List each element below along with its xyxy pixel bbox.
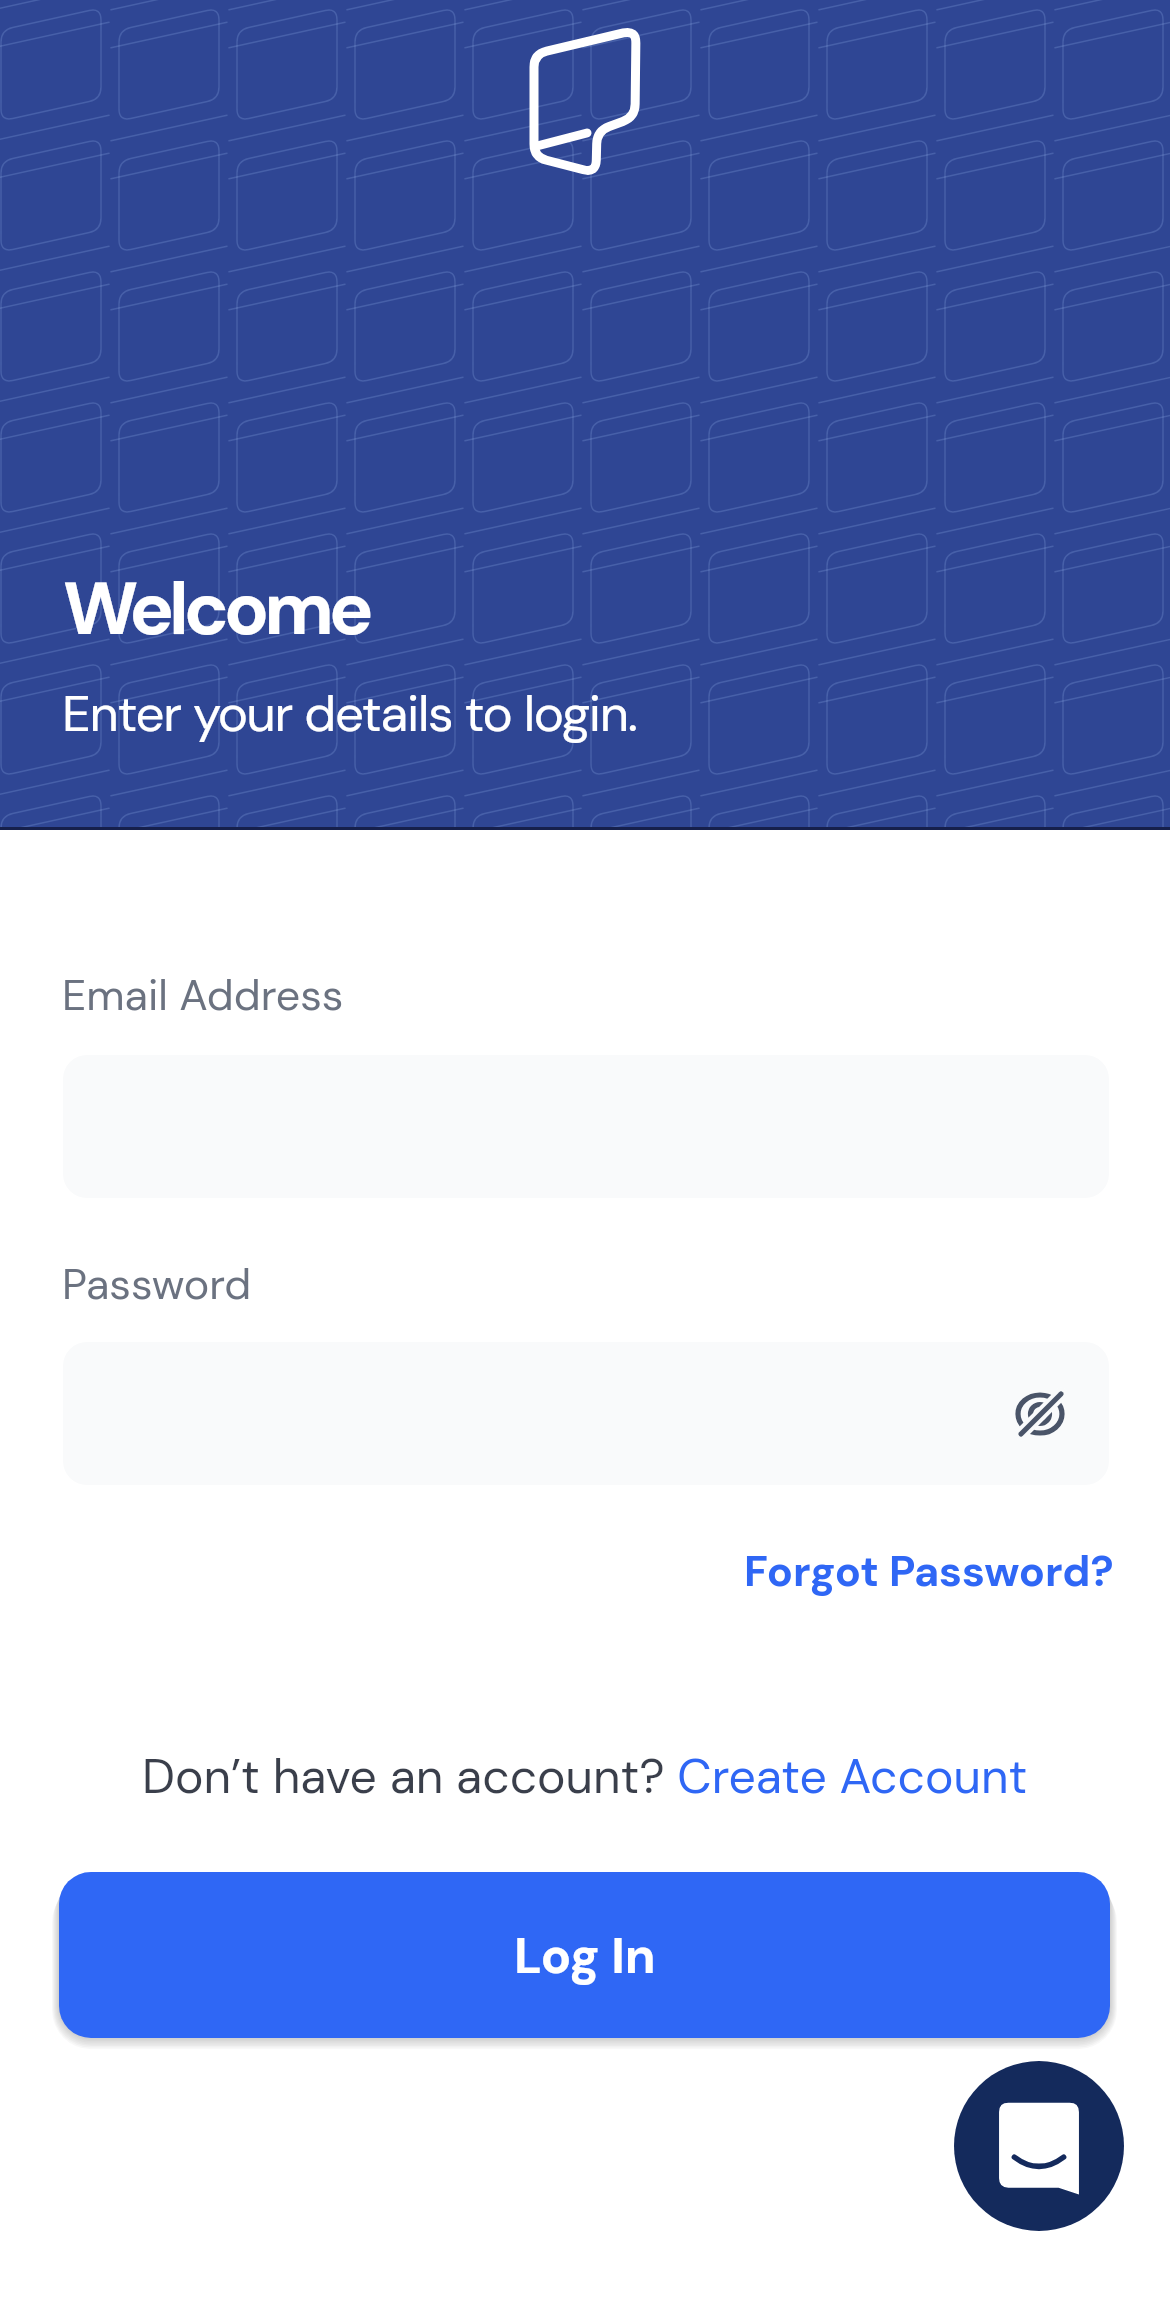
button[interactable]: Log In [59, 1872, 1110, 2038]
button[interactable]: Don’t have an account? Create Account [142, 1745, 1028, 1807]
button[interactable]: Open chat [954, 2061, 1124, 2231]
staticText: Log In [514, 1923, 656, 1988]
staticText: Welcome [63, 561, 369, 657]
staticText: Enter your details to login. [62, 680, 637, 746]
staticText: Don’t have an account? Create Account [142, 1745, 1028, 1807]
staticText: Email Address [62, 967, 344, 1023]
button[interactable]: Show password [63, 1342, 1109, 1485]
button[interactable]: Show password [990, 1364, 1090, 1464]
button[interactable]: Forgot Password? [744, 1543, 1114, 1599]
staticText: Forgot Password? [744, 1543, 1114, 1599]
staticText: Password [62, 1256, 252, 1312]
